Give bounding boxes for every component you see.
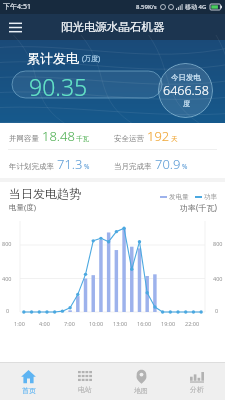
button[interactable]: 分析	[169, 363, 225, 400]
staticText: 首页	[22, 386, 36, 395]
button[interactable]: 首页	[0, 363, 57, 400]
staticText: 16:00	[137, 320, 152, 327]
staticText: 8.59K/s	[136, 3, 157, 11]
staticText: 400	[2, 275, 12, 282]
staticText: 累计发电	[27, 50, 79, 66]
staticText: 阳光电源水晶石机器	[61, 20, 165, 34]
staticText: 度	[183, 99, 190, 108]
staticText: %	[182, 162, 188, 171]
staticText: 7:00	[64, 320, 75, 327]
staticText: 10:00	[89, 320, 104, 327]
button[interactable]: 今日发电	[158, 63, 213, 118]
staticText: 0	[6, 307, 10, 314]
staticText: 电量(度)	[9, 202, 36, 212]
staticText: 800	[213, 240, 223, 247]
staticText: 年计划完成率	[9, 162, 54, 171]
staticText: 千瓦	[76, 135, 89, 143]
staticText: 4:00	[39, 320, 50, 327]
button[interactable]: Menu	[4, 16, 26, 38]
staticText: 今日发电	[171, 73, 201, 82]
staticText: 192	[147, 127, 170, 145]
button[interactable]: 安全运营	[114, 127, 225, 145]
staticText: 地图	[134, 386, 148, 395]
staticText: 22:00	[185, 320, 200, 327]
staticText: 天	[171, 135, 178, 143]
staticText: 电站	[78, 385, 92, 394]
staticText: 当月完成率	[114, 162, 152, 171]
staticText: 6466.58	[163, 82, 209, 99]
staticText: 分析	[190, 385, 204, 394]
staticText: 19:00	[161, 320, 176, 327]
staticText: %	[84, 162, 90, 171]
staticText: 18.48	[42, 127, 75, 145]
staticText: 发电量	[169, 193, 189, 201]
staticText: 800	[2, 240, 12, 247]
staticText: 当日发电趋势	[9, 186, 81, 201]
staticText: 下午4:51	[3, 2, 31, 12]
staticText: 并网容量	[9, 134, 39, 143]
staticText: (万度)	[82, 54, 101, 64]
staticText: 功率	[204, 193, 217, 201]
staticText: 400	[213, 275, 223, 282]
button[interactable]: 地图	[113, 363, 169, 400]
button[interactable]: 并网容量	[9, 127, 112, 145]
staticText: 13:00	[113, 320, 128, 327]
staticText: 功率(千瓦)	[180, 202, 217, 213]
staticText: 安全运营	[114, 134, 144, 143]
staticText: 0	[215, 307, 219, 314]
staticText: 移动 4G	[185, 3, 207, 11]
staticText: 71.3	[57, 155, 83, 173]
button[interactable]: 当月完成率	[114, 155, 225, 173]
staticText: 90.35	[29, 71, 88, 98]
button[interactable]: 电站	[57, 363, 113, 400]
staticText: 1:00	[14, 320, 25, 327]
button[interactable]: 年计划完成率	[9, 155, 112, 173]
staticText: 70.9	[155, 155, 181, 173]
